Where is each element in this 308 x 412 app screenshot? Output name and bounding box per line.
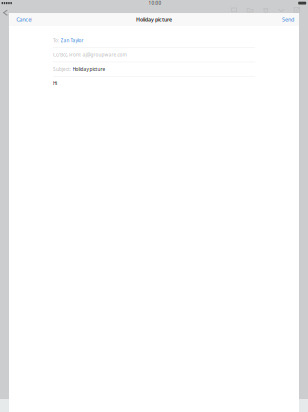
staticText: Cc/Bcc, From: [53,52,81,58]
staticText: Send [282,16,294,23]
staticText: Hi [53,80,57,86]
button[interactable]: Cc/Bcc, From: [9,48,299,62]
button[interactable]: Cancel [9,12,39,27]
staticText: Zan Taylor [61,37,84,44]
staticText: Holiday picture [73,66,106,72]
button[interactable]: Subject: [9,62,299,76]
staticText: Subject: [53,66,71,72]
staticText: 10:00 [148,0,161,6]
button[interactable]: Back [0,0,308,412]
button[interactable]: Send [277,12,299,27]
staticText: To: [53,37,59,44]
button[interactable]: To: [9,33,299,47]
staticText: Cancel [16,16,32,23]
staticText: aj@groupware.com [83,52,127,58]
staticText: Holiday picture [136,16,172,23]
